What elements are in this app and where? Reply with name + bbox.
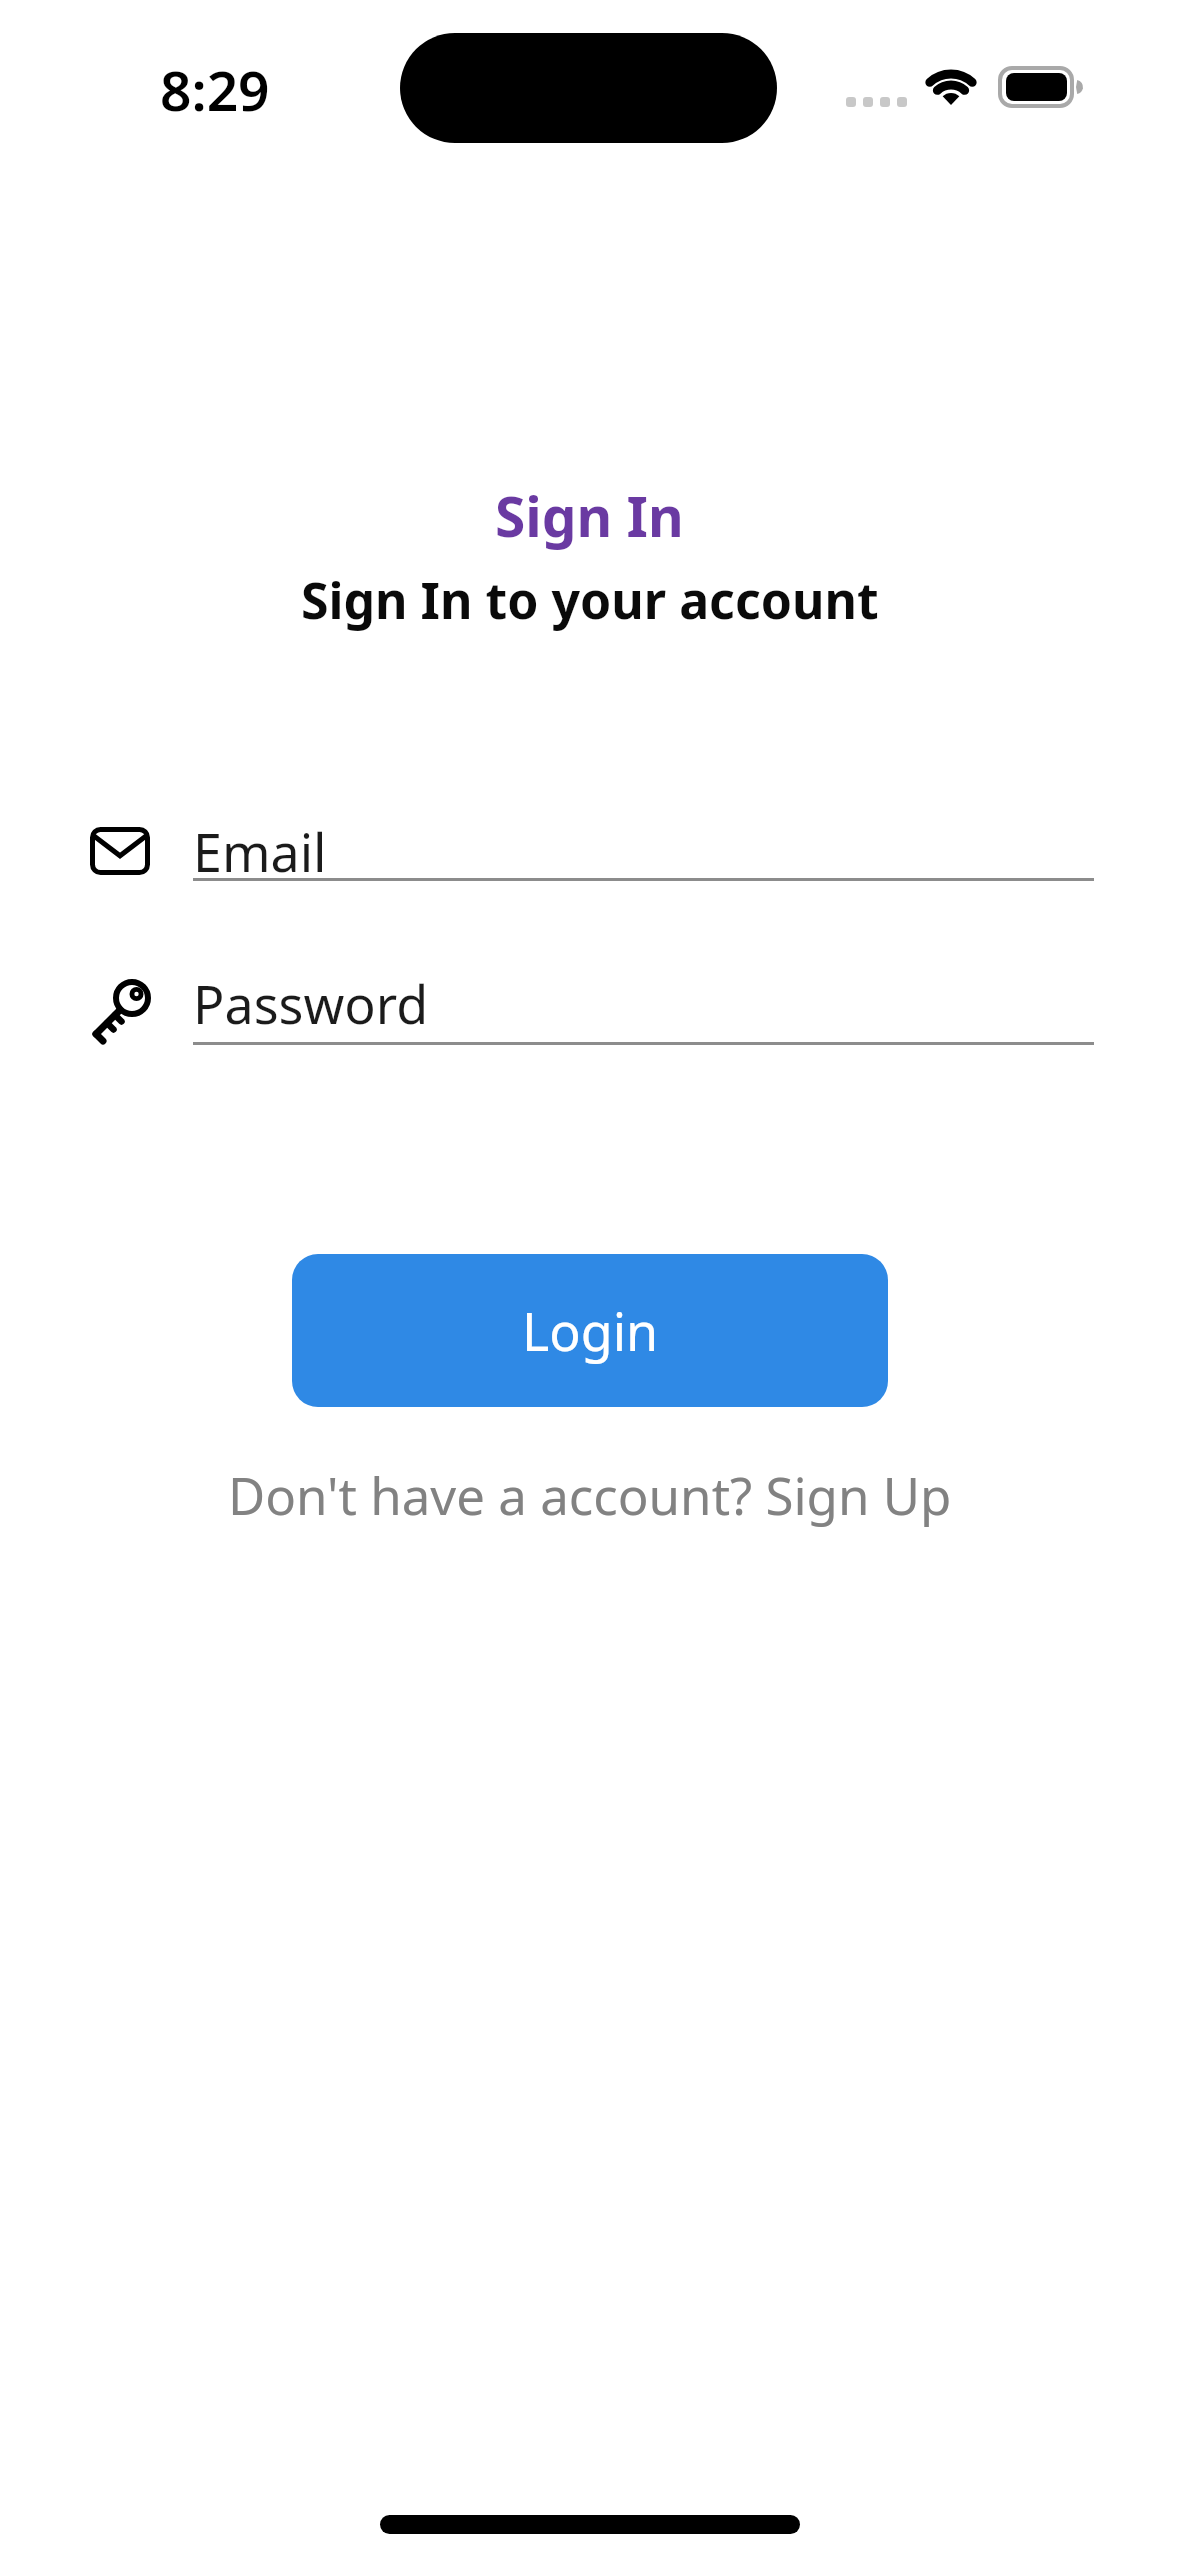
button[interactable]: Password [193,968,1094,1028]
staticText: Don't have a account? Sign Up [228,1460,952,1529]
button[interactable]: Email [193,816,1094,876]
staticText: 8:29 [160,52,270,127]
button[interactable]: Don't have a account? Sign Up [0,1460,1179,1529]
staticText: Email [193,816,327,876]
button[interactable]: Login [292,1254,888,1407]
staticText: Password [193,968,429,1028]
staticText: Sign In [495,478,684,553]
staticText: Login [522,1295,659,1366]
staticText: Sign In to your account [301,566,879,634]
